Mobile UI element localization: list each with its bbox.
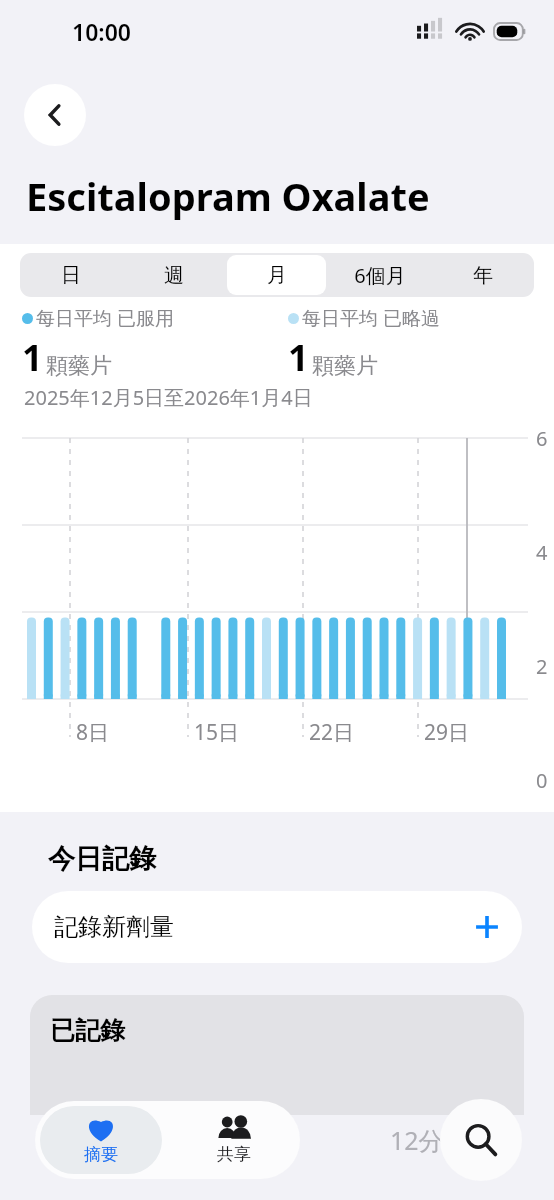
staticText: 摘要	[84, 1144, 118, 1165]
staticText: 4	[536, 539, 548, 566]
staticText: 年	[473, 263, 493, 288]
button[interactable]: 記錄新劑量	[32, 891, 522, 963]
staticText: Escitalopram Oxalate	[26, 170, 430, 222]
staticText: 12分	[390, 1123, 444, 1157]
staticText: 顆藥片	[312, 352, 378, 380]
button[interactable]: Search	[440, 1099, 522, 1181]
staticText: 週	[164, 263, 184, 288]
button[interactable]: Back	[24, 84, 86, 146]
staticText: 15日	[194, 718, 240, 747]
staticText: 月	[267, 263, 287, 288]
staticText: 日	[61, 263, 81, 288]
staticText: 1	[22, 333, 43, 382]
staticText: 8日	[76, 718, 110, 747]
button[interactable]: 6個月	[330, 255, 429, 295]
staticText: 每日平均 已略過	[302, 305, 440, 331]
button[interactable]: 年	[433, 255, 532, 295]
staticText: 22日	[309, 718, 355, 747]
staticText: 6	[536, 425, 548, 452]
staticText: 2025年12月5日至2026年1月4日	[24, 384, 313, 411]
staticText: 6個月	[354, 262, 406, 289]
staticText: 今日記錄	[48, 842, 156, 876]
button[interactable]: 週	[124, 255, 223, 295]
staticText: 已記錄	[50, 1015, 125, 1046]
staticText: 每日平均 已服用	[36, 305, 174, 331]
button[interactable]: 共享	[167, 1101, 300, 1179]
staticText: 1	[288, 333, 309, 382]
button[interactable]: 日	[22, 255, 120, 295]
button[interactable]: 月	[227, 255, 326, 295]
staticText: 共享	[217, 1144, 251, 1165]
staticText: 顆藥片	[46, 352, 112, 380]
staticText: 10:00	[72, 16, 131, 47]
staticText: 0	[536, 767, 548, 794]
staticText: 記錄新劑量	[54, 912, 174, 942]
button[interactable]: 摘要	[40, 1106, 162, 1174]
staticText: 2	[536, 653, 548, 680]
staticText: 29日	[424, 718, 470, 747]
